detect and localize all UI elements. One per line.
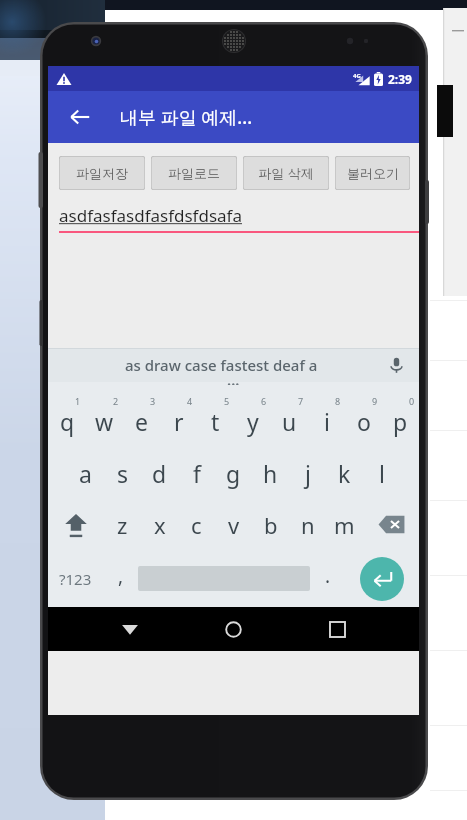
button[interactable]: Back (62, 99, 98, 135)
staticText: u (282, 406, 297, 437)
button[interactable]: Backspace (363, 499, 419, 550)
button[interactable]: h (252, 448, 289, 499)
staticText: , (118, 563, 124, 589)
button[interactable]: as draw case fastest deaf a (125, 355, 318, 375)
button[interactable]: 7 (271, 390, 308, 448)
button[interactable]: c (178, 499, 215, 550)
button[interactable]: 3 (123, 390, 160, 448)
button[interactable]: z (104, 499, 141, 550)
button[interactable]: d (141, 448, 178, 499)
staticText: i (324, 406, 330, 437)
staticText: j (305, 458, 311, 489)
button[interactable]: . (310, 550, 345, 607)
button[interactable]: Back (97, 607, 162, 651)
staticText: p (393, 406, 408, 437)
button[interactable]: l (363, 448, 400, 499)
button[interactable]: 1 (48, 390, 86, 448)
staticText: 9 (372, 395, 378, 407)
staticText: y (247, 406, 259, 437)
staticText: asdfasfasdfasfdsfdsafa (59, 204, 242, 227)
button[interactable]: 파일 삭제 (243, 156, 329, 190)
staticText: 7 (298, 395, 304, 407)
staticText: a (79, 458, 92, 489)
staticText: 1 (75, 395, 81, 407)
button[interactable]: v (215, 499, 252, 550)
button[interactable]: Home (201, 607, 266, 651)
button[interactable]: 파일로드 (151, 156, 237, 190)
staticText: 내부 파일 예제... (120, 105, 253, 130)
staticText: q (60, 406, 75, 437)
staticText: 3 (150, 395, 156, 407)
button[interactable]: 2 (86, 390, 123, 448)
button[interactable]: k (326, 448, 363, 499)
button[interactable]: 5 (197, 390, 234, 448)
staticText: v (228, 510, 240, 540)
staticText: 파일로드 (168, 165, 220, 181)
button[interactable]: x (141, 499, 178, 550)
staticText: z (117, 510, 128, 540)
staticText: n (301, 510, 315, 540)
button[interactable]: ?123 (48, 550, 103, 607)
staticText: d (152, 458, 167, 489)
staticText: r (174, 406, 184, 437)
staticText: k (338, 458, 351, 489)
button[interactable]: , (103, 550, 138, 607)
staticText: 8 (335, 395, 341, 407)
button[interactable]: 6 (234, 390, 271, 448)
button[interactable]: Space (138, 550, 310, 607)
button[interactable]: 0 (382, 390, 419, 448)
staticText: . (325, 563, 331, 589)
staticText: 2 (113, 395, 119, 407)
staticText: t (211, 406, 220, 437)
staticText: l (379, 458, 385, 489)
staticText: ?123 (59, 569, 92, 589)
button[interactable]: g (215, 448, 252, 499)
button[interactable]: a (67, 448, 104, 499)
staticText: 4G (353, 72, 361, 80)
staticText: 파일 삭제 (258, 164, 314, 182)
staticText: h (263, 458, 278, 489)
button[interactable]: Shift (48, 499, 104, 550)
button[interactable]: Recent apps (305, 607, 370, 651)
staticText: f (193, 458, 201, 489)
staticText: c (191, 510, 202, 540)
button[interactable]: f (178, 448, 215, 499)
staticText: 파일저장 (76, 165, 128, 181)
button[interactable]: 4 (160, 390, 197, 448)
staticText: 4 (187, 395, 193, 407)
staticText: o (357, 406, 371, 437)
staticText: e (135, 406, 148, 437)
button[interactable]: 8 (308, 390, 345, 448)
staticText: s (117, 458, 129, 489)
button[interactable]: b (252, 499, 289, 550)
button[interactable]: s (104, 448, 141, 499)
staticText: 6 (261, 395, 267, 407)
staticText: b (264, 510, 278, 540)
button[interactable]: 9 (345, 390, 382, 448)
staticText: x (154, 510, 166, 540)
button[interactable]: Voice input (383, 352, 409, 378)
button[interactable]: m (326, 499, 363, 550)
button[interactable]: n (289, 499, 326, 550)
staticText: 불러오기 (347, 165, 399, 181)
staticText: ••• (227, 377, 240, 385)
staticText: 2:39 (388, 71, 412, 87)
button[interactable]: 불러오기 (335, 156, 410, 190)
staticText: m (334, 510, 355, 540)
button[interactable]: 파일저장 (59, 156, 145, 190)
staticText: 0 (409, 395, 415, 407)
staticText: w (95, 406, 114, 437)
button[interactable]: j (289, 448, 326, 499)
button[interactable]: Enter (345, 550, 419, 607)
staticText: 5 (224, 395, 230, 407)
staticText: g (226, 458, 241, 489)
